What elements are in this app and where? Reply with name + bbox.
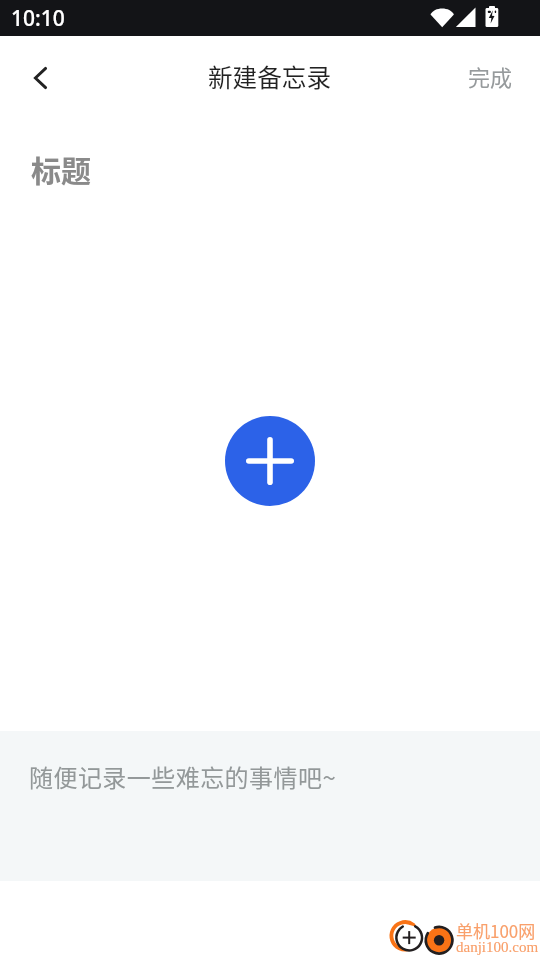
button[interactable]: 完成 — [444, 44, 540, 108]
staticText: 随便记录一些难忘的事情吧~ — [29, 759, 337, 794]
button[interactable]: Back — [10, 48, 70, 108]
staticText: 10:10 — [11, 4, 65, 33]
staticText: 完成 — [468, 60, 513, 92]
button[interactable]: Add — [225, 416, 315, 506]
staticText: 新建备忘录 — [208, 58, 331, 94]
staticText: 标题 — [31, 147, 91, 190]
staticText: danji100.com — [456, 939, 539, 956]
staticText: 单机100网 — [456, 918, 536, 943]
